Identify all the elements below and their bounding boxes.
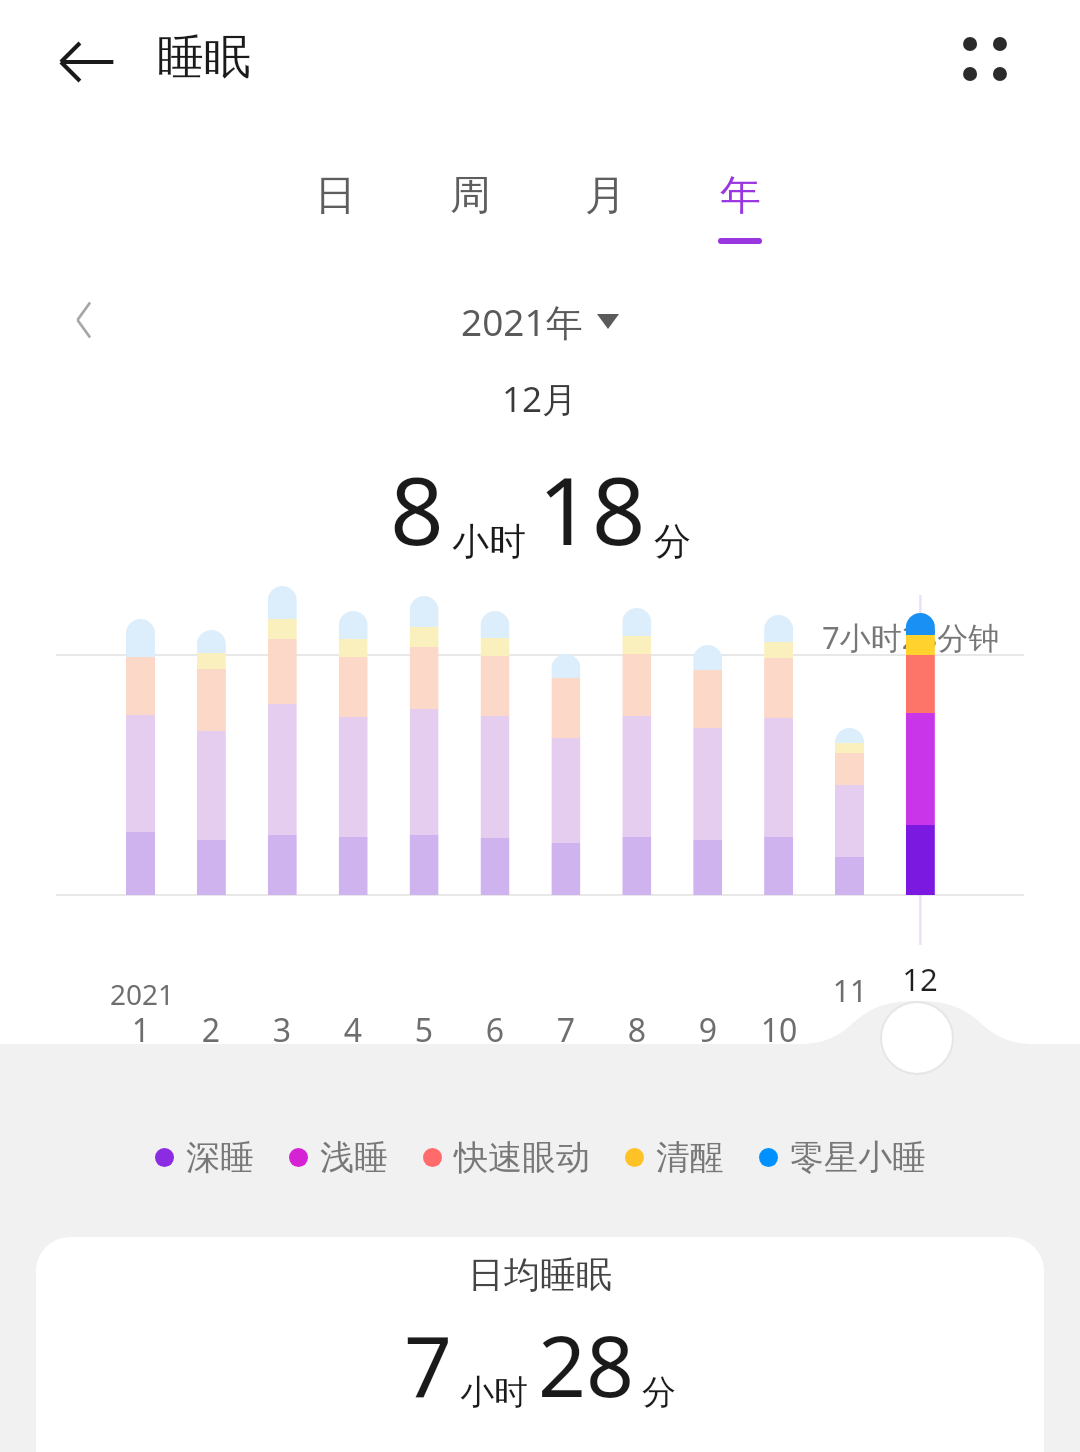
button[interactable]: 周	[414, 170, 526, 262]
staticText: 小时	[460, 1371, 528, 1414]
button[interactable]: 清醒	[625, 1136, 724, 1179]
staticText: 2021	[110, 975, 175, 1013]
staticText: 零星小睡	[790, 1136, 926, 1179]
staticText: 月	[585, 170, 626, 222]
staticText: 分	[654, 518, 691, 565]
staticText: 快速眼动	[454, 1136, 590, 1179]
staticText: 10	[755, 1008, 803, 1052]
button[interactable]: 深睡	[155, 1136, 254, 1179]
staticText: 小时	[452, 518, 526, 565]
button[interactable]: 年	[684, 170, 796, 262]
staticText: 分	[642, 1371, 676, 1414]
staticText: 8	[613, 1008, 661, 1052]
staticText: 日	[315, 170, 356, 222]
staticText: 2021年	[461, 296, 583, 347]
button[interactable]: 快速眼动	[423, 1136, 590, 1179]
staticText: 3	[258, 1008, 306, 1052]
button[interactable]: 2021年	[0, 296, 1080, 347]
staticText: 18	[538, 445, 646, 573]
staticText: 12	[896, 958, 944, 1000]
staticText: 清醒	[656, 1136, 724, 1179]
staticText: 9	[684, 1008, 732, 1052]
button[interactable]: Back	[48, 24, 124, 100]
staticText: 7	[404, 1307, 453, 1421]
staticText: 睡眠	[157, 28, 251, 87]
button[interactable]: Previous year	[46, 282, 122, 358]
staticText: 28	[538, 1307, 635, 1421]
button[interactable]: More options	[942, 16, 1034, 108]
staticText: 深睡	[186, 1136, 254, 1179]
staticText: 4	[329, 1008, 377, 1052]
staticText: 1	[117, 1008, 165, 1052]
staticText: 8	[390, 445, 444, 573]
staticText: 周	[450, 170, 491, 222]
staticText: 7小时28分钟	[822, 616, 1000, 658]
staticText: 6	[471, 1008, 519, 1052]
staticText: 浅睡	[320, 1136, 388, 1179]
staticText: 12月	[502, 375, 578, 423]
staticText: 日均睡眠	[468, 1252, 612, 1297]
staticText: 2	[187, 1008, 235, 1052]
button[interactable]: 浅睡	[289, 1136, 388, 1179]
staticText: 7	[542, 1008, 590, 1052]
button[interactable]: 零星小睡	[759, 1136, 926, 1179]
staticText: 11	[826, 970, 874, 1011]
button[interactable]: 日	[279, 170, 391, 262]
button[interactable]: 月	[549, 170, 661, 262]
staticText: 5	[400, 1008, 448, 1052]
staticText: 年	[720, 170, 761, 222]
